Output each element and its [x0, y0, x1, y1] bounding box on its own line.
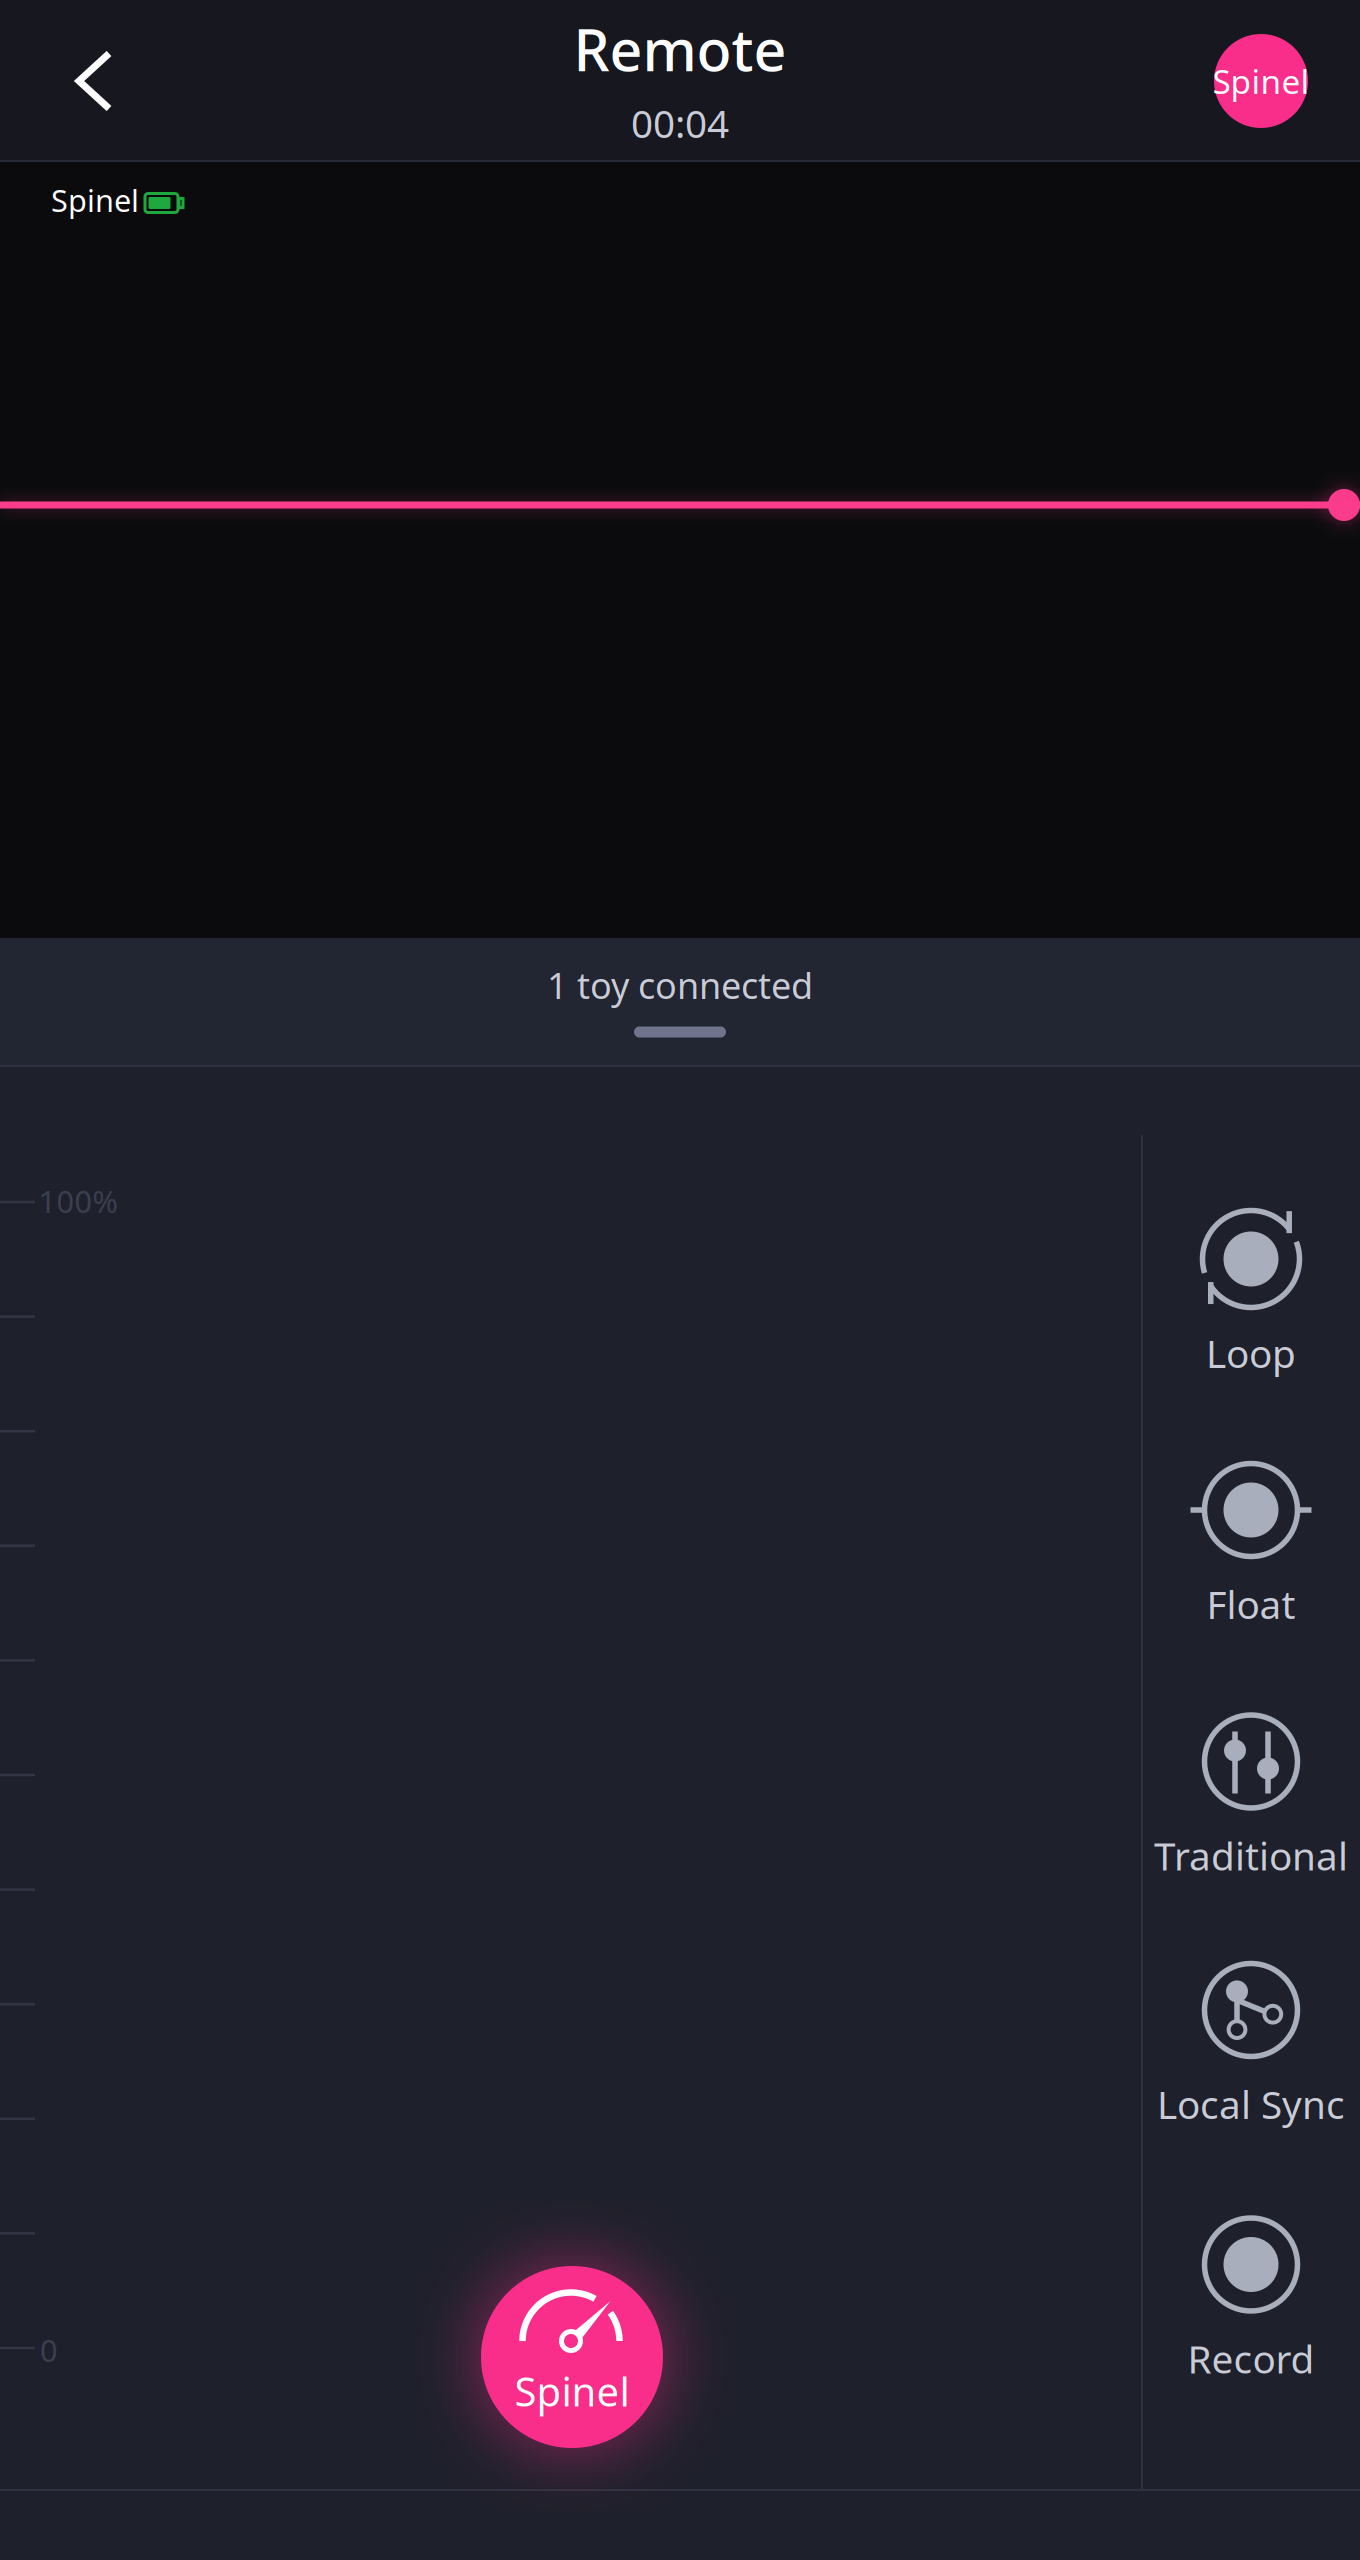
staticText: Remote — [573, 11, 786, 87]
staticText: 100% — [38, 1181, 117, 1221]
staticText: Float — [1206, 1578, 1295, 1630]
button[interactable]: Loop — [1141, 1168, 1360, 1418]
button[interactable]: Traditional — [1141, 1670, 1360, 1920]
button[interactable]: Spinel — [470, 2255, 674, 2459]
button[interactable]: Record — [1141, 2173, 1360, 2423]
button[interactable]: Float — [1141, 1419, 1360, 1669]
staticText: Loop — [1206, 1327, 1296, 1379]
staticText: Traditional — [1154, 1830, 1348, 1881]
staticText: Spinel — [1212, 59, 1309, 103]
button[interactable]: Local Sync — [1141, 1919, 1360, 2169]
staticText: 00:04 — [631, 97, 729, 149]
staticText: Spinel — [514, 2364, 629, 2417]
staticText: Record — [1187, 2333, 1314, 2384]
staticText: Local Sync — [1157, 2078, 1345, 2130]
staticText: 0 — [40, 2330, 58, 2370]
button[interactable]: Spinel — [1191, 11, 1331, 151]
staticText: Spinel — [51, 180, 139, 220]
staticText: 1 toy connected — [547, 961, 813, 1009]
button[interactable]: Back — [24, 6, 164, 156]
